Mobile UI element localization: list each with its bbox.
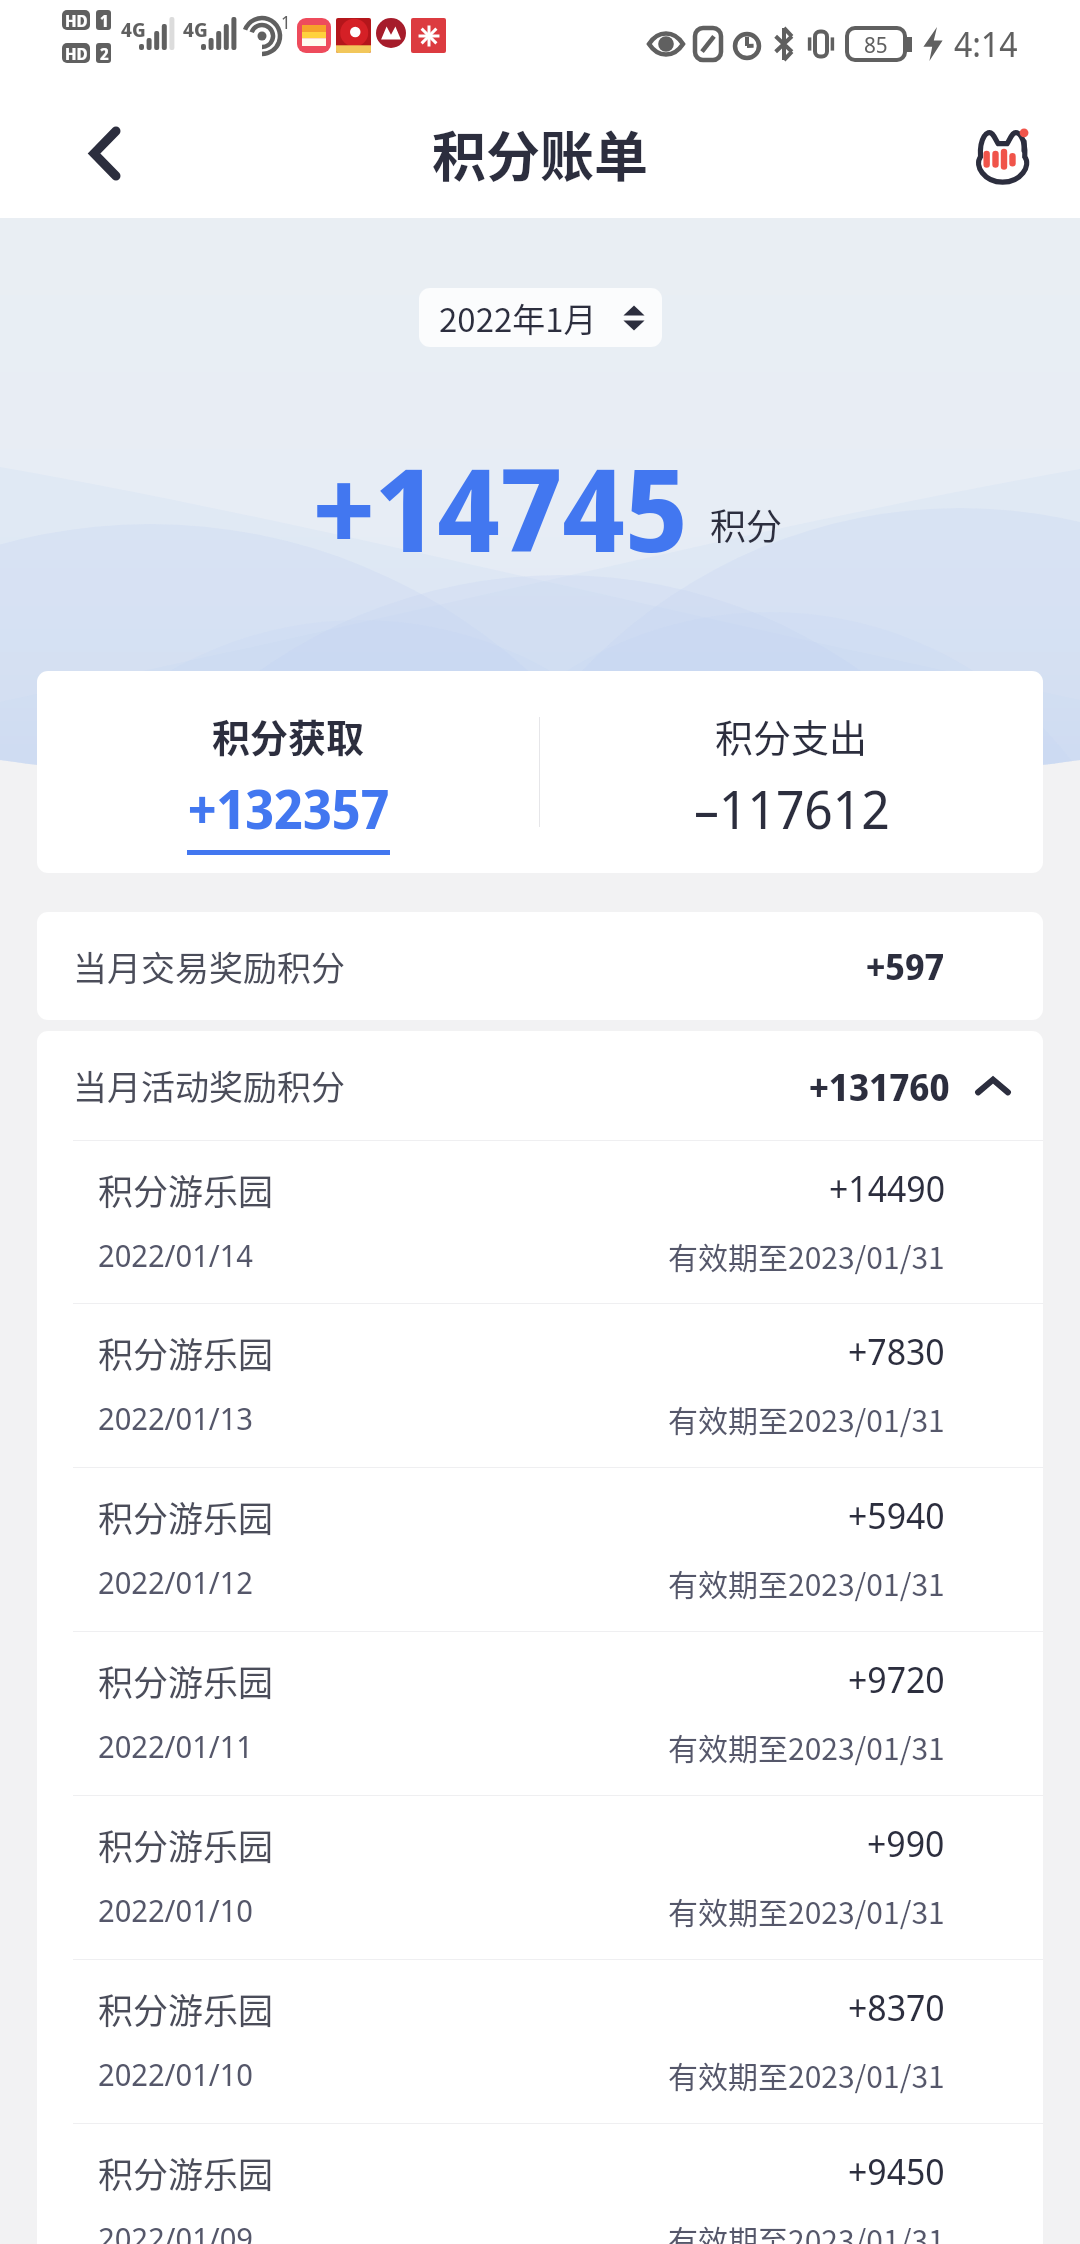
staticText: 2022/01/13 (98, 1397, 253, 1439)
staticText: +990 (867, 1819, 945, 1868)
button[interactable]: 当月活动奖励积分 (37, 1031, 1043, 1140)
staticText: 4:14 (954, 21, 1018, 67)
button[interactable]: Back (63, 111, 147, 195)
staticText: 积分账单 (432, 114, 648, 192)
staticText: 有效期至2023/01/31 (668, 2053, 945, 2096)
button[interactable]: 积分游乐园 (37, 1632, 1043, 1795)
button[interactable]: 积分游乐园 (37, 1468, 1043, 1631)
button[interactable]: 当月交易奖励积分 (37, 912, 1043, 1020)
staticText: 当月交易奖励积分 (73, 942, 345, 991)
staticText: 积分游乐园 (98, 1983, 274, 2034)
staticText: +131760 (809, 1061, 950, 1111)
staticText: 当月活动奖励积分 (73, 1061, 345, 1110)
staticText: +8370 (848, 1983, 945, 2032)
staticText: 有效期至2023/01/31 (668, 1561, 945, 1604)
staticText: 积分游乐园 (98, 1655, 274, 1706)
button[interactable]: Customer service (962, 111, 1046, 195)
staticText: 积分游乐园 (98, 1491, 274, 1542)
staticText: 4G (121, 16, 146, 43)
staticText: 2022/01/12 (98, 1561, 253, 1603)
staticText: 积分获取 (212, 708, 365, 763)
staticText: 2022/01/14 (98, 1234, 253, 1276)
staticText: +14745 (313, 429, 688, 586)
button[interactable]: 积分游乐园 (37, 1141, 1043, 1303)
button[interactable]: 积分游乐园 (37, 1304, 1043, 1467)
staticText: HD (65, 43, 88, 65)
staticText: +14490 (829, 1164, 945, 1213)
staticText: 积分 (710, 498, 783, 550)
staticText: 有效期至2023/01/31 (668, 2217, 945, 2244)
staticText: +5940 (848, 1491, 945, 1540)
staticText: 2022/01/11 (98, 1725, 253, 1767)
staticText: –117612 (694, 772, 890, 844)
button[interactable]: 积分游乐园 (37, 1796, 1043, 1959)
staticText: 积分支出 (715, 708, 868, 763)
staticText: 1 (281, 10, 291, 35)
button[interactable]: 2022年1月 (419, 288, 662, 347)
staticText: 4G (183, 16, 208, 43)
staticText: +597 (866, 942, 945, 991)
staticText: 1 (100, 10, 109, 32)
staticText: 有效期至2023/01/31 (668, 1725, 945, 1768)
staticText: 有效期至2023/01/31 (668, 1397, 945, 1440)
staticText: 积分游乐园 (98, 1327, 274, 1378)
button[interactable]: 积分游乐园 (37, 1960, 1043, 2123)
staticText: 2022年1月 (439, 294, 597, 342)
staticText: 有效期至2023/01/31 (668, 1889, 945, 1932)
staticText: HD (65, 10, 88, 32)
staticText: 2022/01/10 (98, 1889, 253, 1931)
staticText: 2 (100, 43, 109, 65)
staticText: 2022/01/10 (98, 2053, 253, 2095)
staticText: 积分游乐园 (98, 2147, 274, 2198)
staticText: 积分游乐园 (98, 1164, 274, 1215)
staticText: 2022/01/09 (98, 2217, 253, 2244)
button[interactable]: 积分游乐园 (37, 2124, 1043, 2244)
staticText: 85 (864, 29, 888, 59)
staticText: +132357 (188, 772, 390, 844)
staticText: +7830 (848, 1327, 945, 1376)
staticText: +9450 (848, 2147, 945, 2196)
staticText: 积分游乐园 (98, 1819, 274, 1870)
staticText: 有效期至2023/01/31 (668, 1234, 945, 1277)
staticText: +9720 (848, 1655, 945, 1704)
